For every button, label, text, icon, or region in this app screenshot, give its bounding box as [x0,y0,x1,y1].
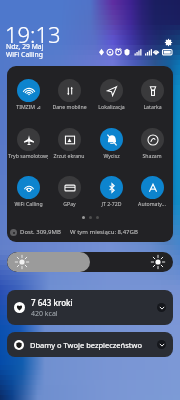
staticText: JT 2-72D [101,200,122,207]
staticText: Zrzut ekranu [53,152,85,159]
button[interactable]: Dane mobilne [49,79,89,110]
staticText: Wycisz [103,152,120,159]
staticText: Tryb samolotowy [8,152,48,159]
staticText: Shazam [142,152,162,159]
button[interactable]: Wycisz [91,128,131,159]
button[interactable]: Automaty... [132,176,172,207]
button[interactable]: TIMZIM ⊿ [8,79,48,110]
button[interactable]: Zrzut ekranu [49,128,89,159]
button[interactable]: Tryb samolotowy [8,128,48,159]
staticText: Dost. 309,9MB [20,228,61,236]
staticText: WiFi Calling [6,50,43,59]
staticText: 420 kcal [31,309,58,319]
button[interactable]: GPay [49,176,89,207]
button[interactable]: Shazam [132,128,172,159]
button[interactable]: Expand [157,340,166,349]
staticText: Dane mobilne [52,103,87,110]
button[interactable]: Settings [161,35,176,50]
staticText: Lokalizacja [98,103,125,110]
staticText: WiFi Calling [14,200,43,207]
staticText: Ndz, 29 Maj [6,42,44,51]
staticText: 7 643 kroki [31,297,73,308]
button[interactable]: Dbamy o Twoje bezpieczeństwo [7,332,173,357]
button[interactable]: Lokalizacja [91,79,131,110]
button[interactable]: 7 643 kroki [7,290,173,325]
staticText: W tym miesiącu: 8,47GB [70,228,138,236]
button[interactable]: Latarka [132,79,172,110]
staticText: Automaty... [138,200,166,207]
staticText: Latarka [143,103,162,110]
button[interactable]: JT 2-72D [91,176,131,207]
button[interactable]: WiFi Calling [8,176,48,207]
staticText: 19:13 [5,19,61,49]
button[interactable]: Brightness [7,252,173,272]
staticText: Dbamy o Twoje bezpieczeństwo [30,340,142,350]
staticText: GPay [63,200,76,207]
button[interactable]: Expand [157,303,166,312]
staticText: TIMZIM ⊿ [16,103,41,110]
